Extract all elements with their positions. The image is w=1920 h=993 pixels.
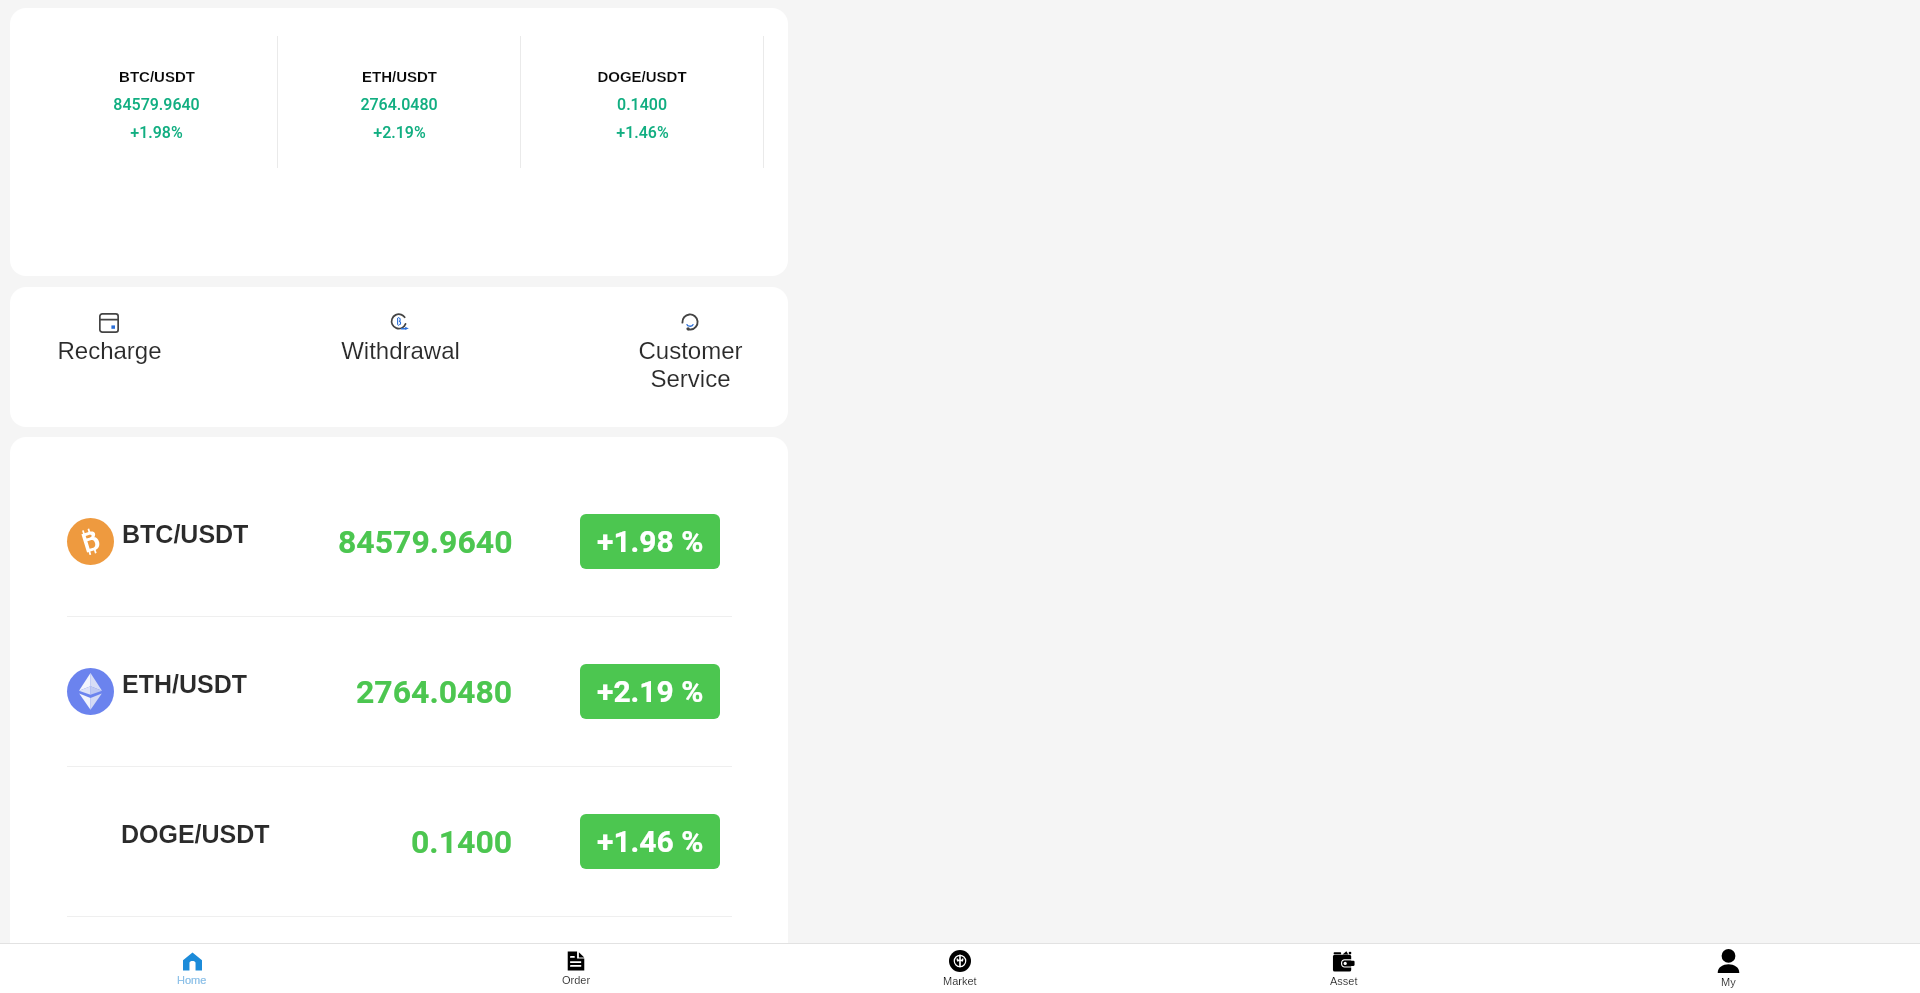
staticText: +1.98% [130, 123, 183, 142]
button[interactable]: DOGE/USDT [521, 8, 763, 196]
staticText: +2.19% [373, 123, 426, 142]
staticText: 84579.9640 [113, 95, 200, 114]
other: Withdrawal [390, 313, 410, 333]
staticText: 0.1400 [617, 95, 667, 114]
staticText: 84579.9640 [338, 523, 513, 561]
staticText: 2764.0480 [356, 673, 513, 711]
staticText: 0.1400 [411, 823, 513, 861]
staticText: Customer Service [638, 337, 743, 392]
button[interactable]: DOGE/USDT [10, 767, 788, 916]
staticText: Asset [1330, 975, 1358, 987]
button[interactable]: BTC/USDT [36, 8, 277, 196]
staticText: ETH/USDT [362, 68, 437, 85]
button[interactable]: Customer Service [592, 313, 788, 427]
button[interactable]: Order [384, 944, 768, 993]
staticText: DOGE/USDT [121, 820, 270, 848]
staticText: +2.19 % [597, 674, 704, 709]
staticText: Market [943, 975, 977, 987]
staticText: DOGE/USDT [597, 68, 687, 85]
staticText: Home [177, 974, 207, 986]
button[interactable]: ETH/USDT [278, 8, 520, 196]
button[interactable]: ETH/USDT [10, 617, 788, 766]
staticText: BTC/USDT [119, 68, 195, 85]
button[interactable]: Home [0, 944, 384, 993]
button[interactable]: Asset [1152, 944, 1536, 993]
staticText: My [1721, 976, 1736, 988]
button[interactable]: BTC/USDT [10, 467, 788, 616]
staticText: +1.98 % [597, 524, 704, 559]
button[interactable]: Withdrawal [301, 313, 499, 427]
staticText: Order [562, 974, 591, 986]
staticText: BTC/USDT [122, 520, 249, 548]
other: Recharge [99, 313, 119, 333]
staticText: Withdrawal [341, 337, 460, 364]
button[interactable]: Market [768, 944, 1152, 993]
staticText: Recharge [57, 337, 162, 364]
button[interactable]: My [1536, 944, 1920, 993]
staticText: 2764.0480 [360, 95, 438, 114]
other: Customer Service [680, 313, 700, 333]
button[interactable]: Recharge [10, 313, 208, 427]
staticText: +1.46% [616, 123, 669, 142]
staticText: ETH/USDT [122, 670, 247, 698]
staticText: +1.46 % [597, 824, 704, 859]
